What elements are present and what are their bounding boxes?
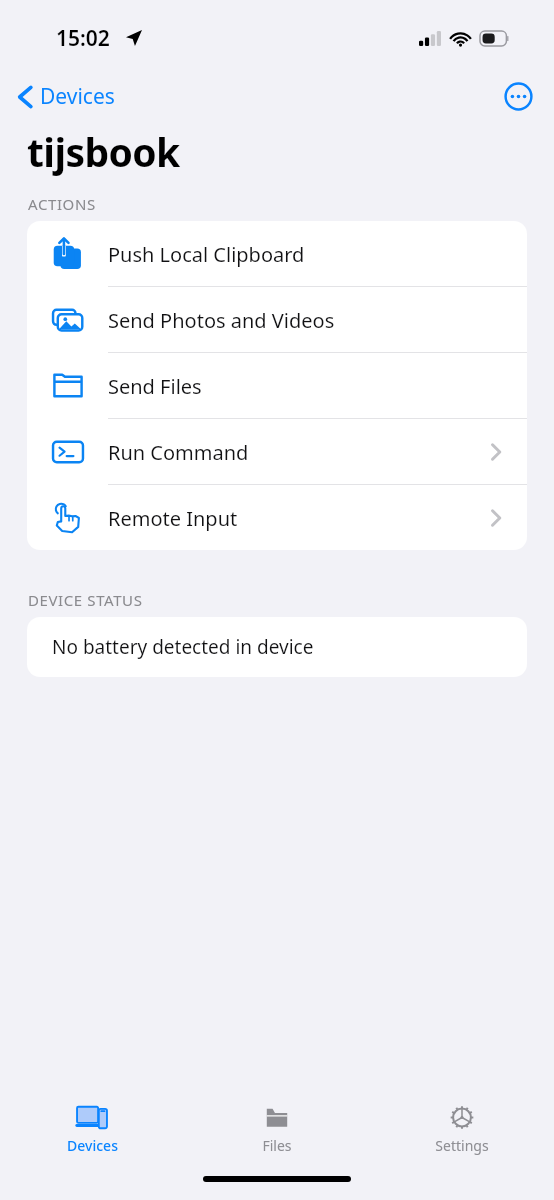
staticText: Send Files	[108, 373, 527, 400]
staticText: Devices	[67, 1136, 118, 1155]
staticText: tijsbook	[27, 125, 180, 178]
button[interactable]: Settings	[369, 1092, 554, 1155]
button[interactable]: More options	[500, 78, 536, 114]
button[interactable]: Remote Input	[27, 485, 527, 550]
staticText: 15:02	[56, 24, 110, 53]
staticText: ACTIONS	[28, 194, 96, 214]
button[interactable]: Files	[184, 1092, 369, 1155]
button[interactable]: Push Local Clipboard	[27, 221, 527, 286]
staticText: DEVICE STATUS	[28, 590, 143, 610]
staticText: No battery detected in device	[52, 634, 314, 660]
staticText: Run Command	[108, 439, 491, 466]
staticText: Files	[262, 1136, 292, 1155]
staticText: Settings	[435, 1136, 489, 1155]
staticText: Push Local Clipboard	[108, 241, 527, 268]
button[interactable]: Run Command	[27, 419, 527, 484]
button[interactable]: Devices	[0, 1092, 184, 1155]
staticText: Devices	[40, 82, 115, 111]
staticText: Send Photos and Videos	[108, 307, 527, 334]
staticText: Remote Input	[108, 505, 491, 532]
button[interactable]: Devices	[10, 78, 125, 115]
button[interactable]: Send Photos and Videos	[27, 287, 527, 352]
button[interactable]: Send Files	[27, 353, 527, 418]
